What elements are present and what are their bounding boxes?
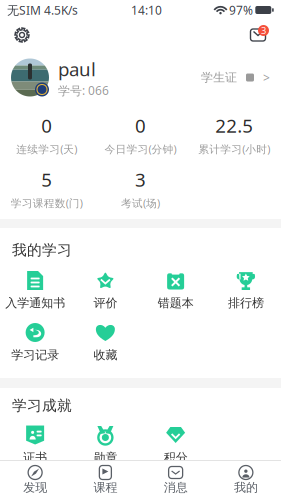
staticText: 0 [41, 113, 52, 138]
staticText: 14:10 [131, 2, 162, 18]
staticText: 收藏 [93, 348, 117, 362]
staticText: 发现 [23, 480, 47, 495]
staticText: 课程 [93, 480, 117, 495]
button[interactable]: 评价 [70, 269, 140, 314]
staticText: 连续学习(天) [16, 142, 77, 156]
staticText: 学生证 [201, 70, 237, 85]
button[interactable]: 课程 [70, 460, 140, 500]
button[interactable]: 消息 [140, 460, 211, 500]
button[interactable]: 发现 [0, 460, 70, 500]
staticText: 累计学习(小时) [198, 142, 270, 156]
staticText: 勋章 [93, 450, 117, 465]
staticText: 评价 [93, 296, 117, 310]
button[interactable]: 勋章 [70, 424, 140, 469]
staticText: 97% [226, 2, 253, 18]
staticText: > [263, 69, 270, 85]
staticText: 学习记录 [11, 348, 59, 362]
staticText: 错题本 [158, 296, 194, 310]
staticText: 考试(场) [121, 196, 160, 210]
button[interactable]: paul [0, 50, 281, 105]
button[interactable]: 设置 [10, 23, 34, 47]
staticText: 积分 [164, 450, 188, 465]
staticText: 我的 [234, 480, 258, 495]
button[interactable]: 入学通知书 [0, 269, 70, 314]
staticText: 22.5 [215, 113, 253, 138]
button[interactable]: 我的 [211, 460, 281, 500]
staticText: 3 [135, 167, 146, 192]
staticText: 无SIM 4.5K/s [7, 2, 78, 18]
staticText: 学号: 066 [58, 82, 109, 98]
staticText: 证书 [23, 450, 47, 465]
staticText: 0 [135, 113, 146, 138]
staticText: paul [58, 57, 96, 81]
staticText: 学习课程数(门) [11, 196, 83, 210]
button[interactable]: 积分 [140, 424, 211, 469]
staticText: 消息 [164, 480, 188, 495]
button[interactable]: 证书 [0, 424, 70, 469]
button[interactable]: 收藏 [70, 321, 140, 366]
staticText: 排行榜 [228, 296, 264, 310]
staticText: 今日学习(分钟) [104, 142, 176, 156]
button[interactable]: 学习记录 [0, 321, 70, 366]
button[interactable]: 消息 [245, 25, 271, 45]
staticText: 我的学习 [12, 241, 72, 259]
button[interactable]: 错题本 [140, 269, 211, 314]
staticText: 入学通知书 [5, 296, 65, 310]
staticText: 3 [261, 24, 266, 37]
staticText: 学习成就 [12, 396, 72, 414]
staticText: 5 [41, 167, 52, 192]
button[interactable]: 排行榜 [211, 269, 281, 314]
